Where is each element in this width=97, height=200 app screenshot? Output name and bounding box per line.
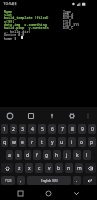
staticText: 4 [31,126,34,133]
staticText: DIR_B [63,15,74,20]
staticText: 8 [71,126,74,133]
staticText: Name [4,9,13,14]
staticText: . [76,177,78,184]
button[interactable]: r [28,137,36,147]
staticText: j [66,152,68,159]
button[interactable]: p [88,137,96,147]
button[interactable]: b [55,163,63,173]
button[interactable]: t [38,137,46,147]
button[interactable]: k [73,150,81,160]
staticText: z [18,165,21,172]
button[interactable]: Recents [13,186,27,200]
staticText: c [38,165,41,172]
button[interactable]: ?123 [1,176,15,185]
button[interactable]: Enter [83,176,96,185]
staticText: Device 0:0 [4,32,25,37]
button[interactable]: 9 [78,124,86,134]
staticText: 2 [12,126,15,133]
staticText: a [8,152,11,159]
staticText: -- hello.dir/ [4,29,31,34]
staticText: s [17,152,20,159]
button[interactable]: Shift [1,163,13,173]
staticText: 5 [41,126,44,133]
staticText: y [51,139,54,146]
button[interactable]: 7 [58,124,66,134]
button[interactable]: Backspace [85,163,96,173]
staticText: FILE [63,19,72,24]
button[interactable]: n [65,163,73,173]
button[interactable]: s [15,150,22,160]
staticText: o [80,139,84,146]
staticText: f [36,152,38,159]
button[interactable]: i [68,137,76,147]
button[interactable]: g [43,150,51,160]
button[interactable]: f [33,150,41,160]
staticText: 0 [91,126,94,133]
button[interactable]: 5 [38,124,46,134]
staticText: 3 [21,126,24,133]
staticText: d [26,152,30,159]
staticText: 6 [51,126,54,133]
staticText: 1 [3,126,6,133]
staticText: h [55,152,59,159]
button[interactable]: 8 [68,124,76,134]
staticText: x(99) [4,19,15,24]
button[interactable]: o [78,137,86,147]
staticText: l [86,152,88,159]
staticText: k [76,152,79,159]
button[interactable]: j [63,150,71,160]
staticText: build_template (filed) [4,15,49,20]
staticText: i [71,139,73,146]
button[interactable]: Home [41,186,55,200]
button[interactable]: Stickers [25,107,37,124]
button[interactable]: y [48,137,56,147]
button[interactable]: , [17,176,25,185]
button[interactable]: z [15,163,23,173]
button[interactable]: l [83,150,91,160]
staticText: build.prop y-contents [4,25,49,30]
button[interactable]: 1 [1,124,8,134]
staticText: r [31,139,34,146]
button[interactable]: 6 [48,124,56,134]
staticText: , [20,177,22,184]
button[interactable]: Google search [4,107,16,124]
button[interactable]: h [53,150,61,160]
button[interactable]: d [24,150,31,160]
staticText: p [90,139,94,146]
staticText: 10:54 [3,1,14,7]
staticText: n [67,165,71,172]
staticText: home $ [4,36,17,41]
staticText: t [41,139,43,146]
staticText: slot [4,12,13,17]
button[interactable]: e [19,137,26,147]
staticText: English (US) [41,179,58,183]
staticText: b [57,165,61,172]
button[interactable]: x [25,163,33,173]
button[interactable]: c [35,163,43,173]
staticText: m [77,165,82,172]
button[interactable]: u [58,137,66,147]
staticText: x [28,165,31,172]
staticText: q [3,139,7,146]
button[interactable]: 0 [88,124,96,134]
button[interactable]: Settings [66,107,78,124]
staticText: 7 [61,126,64,133]
button[interactable]: 3 [19,124,26,134]
button[interactable]: More options [82,107,94,124]
button[interactable]: English (US) [27,176,71,185]
button[interactable]: q [1,137,8,147]
button[interactable]: a [6,150,13,160]
staticText: e [21,139,24,146]
button[interactable]: Back [69,186,83,200]
staticText: FILE_SYS [63,22,80,27]
button[interactable]: m [75,163,83,173]
button[interactable]: . [73,176,81,185]
staticText: data.img x-something [4,22,47,27]
button[interactable]: w [10,137,17,147]
staticText: w [12,139,16,146]
button[interactable]: 2 [10,124,17,134]
button[interactable]: 4 [28,124,36,134]
staticText: ?123 [5,179,12,183]
button[interactable]: Voice input [46,107,58,124]
button[interactable]: v [45,163,53,173]
